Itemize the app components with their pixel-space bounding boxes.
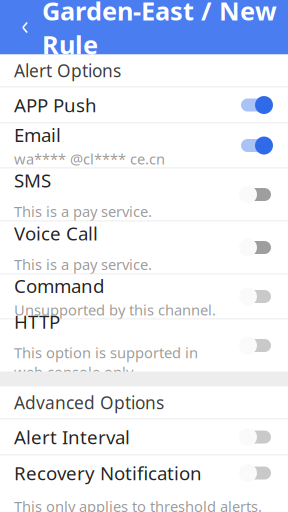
staticText: APP Push xyxy=(14,93,97,117)
staticText: This is a pay service. xyxy=(14,202,152,221)
staticText: This only applies to threshold alerts. I… xyxy=(14,496,262,512)
staticText: HTTP xyxy=(14,309,60,334)
button[interactable]: SMS xyxy=(0,168,288,220)
staticText: Recovery Notification xyxy=(14,461,202,485)
staticText: Unsupported by this channel. xyxy=(14,300,216,320)
staticText: SMS xyxy=(14,168,51,193)
button[interactable]: Recovery Notification xyxy=(0,455,288,512)
button[interactable]: Voice Call xyxy=(0,221,288,273)
staticText: Garden-East / New Rule xyxy=(42,0,277,61)
staticText: Alert Interval xyxy=(14,425,130,449)
button[interactable]: Back xyxy=(8,7,42,47)
button[interactable]: HTTP xyxy=(0,319,288,371)
staticText: Alert Options xyxy=(14,59,121,82)
staticText: Advanced Options xyxy=(14,391,164,414)
button[interactable]: Alert Interval xyxy=(0,419,288,454)
staticText: Voice Call xyxy=(14,221,98,246)
button[interactable]: APP Push xyxy=(0,87,288,122)
button[interactable]: Email xyxy=(0,123,288,167)
staticText: Command xyxy=(14,273,104,298)
button[interactable]: Command xyxy=(0,274,288,318)
staticText: This is a pay service. xyxy=(14,255,152,274)
staticText: wa**** @cl**** ce.cn xyxy=(14,149,165,169)
staticText: Email xyxy=(14,122,61,147)
staticText: This option is supported in web console … xyxy=(14,343,198,382)
